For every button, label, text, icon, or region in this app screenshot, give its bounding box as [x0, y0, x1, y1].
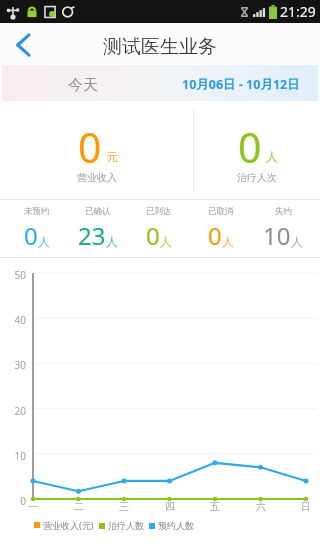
staticText: 日: [294, 500, 318, 513]
staticText: 未预约: [24, 206, 50, 217]
staticText: 40: [3, 313, 26, 327]
staticText: 营业收入(元): [43, 519, 94, 531]
staticText: 0: [208, 219, 222, 252]
staticText: 失约: [275, 206, 292, 217]
staticText: 21:29: [280, 2, 316, 21]
staticText: 0: [78, 119, 102, 175]
button[interactable]: 已到达: [128, 200, 190, 257]
staticText: 今天: [68, 76, 98, 95]
button[interactable]: 10月06日 - 10月12日: [182, 76, 300, 93]
staticText: 一: [21, 500, 45, 513]
staticText: 营业收入: [77, 171, 117, 184]
staticText: 三: [112, 500, 136, 513]
staticText: 0: [146, 219, 160, 252]
button[interactable]: 已取消: [190, 200, 252, 257]
staticText: 治疗人数: [108, 520, 144, 531]
button[interactable]: 治疗人数: [99, 520, 144, 531]
button[interactable]: 营业收入(元): [34, 519, 94, 531]
staticText: 0: [3, 494, 26, 508]
staticText: 人: [266, 149, 278, 164]
staticText: 四: [158, 500, 182, 513]
button[interactable]: Back: [0, 23, 46, 64]
button[interactable]: 今天: [68, 76, 98, 95]
staticText: 已取消: [208, 206, 234, 217]
staticText: 五: [203, 500, 227, 513]
staticText: 50: [3, 268, 26, 282]
staticText: 0: [24, 219, 38, 252]
staticText: 测试医生业务: [103, 35, 217, 59]
button[interactable]: 0: [193, 102, 320, 199]
staticText: 人: [160, 234, 172, 249]
button[interactable]: 预约人数: [149, 520, 194, 531]
staticText: 10: [3, 449, 26, 463]
button[interactable]: 未预约: [6, 200, 67, 257]
staticText: 30: [3, 358, 26, 372]
staticText: 预约人数: [158, 520, 194, 531]
staticText: 元: [106, 149, 118, 164]
staticText: 23: [78, 219, 106, 252]
button[interactable]: 已确认: [67, 200, 128, 257]
staticText: 六: [249, 500, 273, 513]
staticText: 人: [291, 234, 303, 249]
staticText: 人: [38, 234, 50, 249]
staticText: 20: [3, 404, 26, 418]
staticText: 治疗人次: [237, 171, 277, 184]
staticText: 0: [238, 119, 262, 175]
staticText: 人: [222, 234, 234, 249]
staticText: 10月06日 - 10月12日: [182, 76, 300, 93]
button[interactable]: 0: [0, 102, 193, 199]
staticText: 二: [67, 500, 91, 513]
staticText: 10: [263, 219, 291, 252]
button[interactable]: 失约: [252, 200, 314, 257]
staticText: 已到达: [146, 206, 172, 217]
staticText: 人: [106, 234, 118, 249]
staticText: 已确认: [85, 206, 111, 217]
